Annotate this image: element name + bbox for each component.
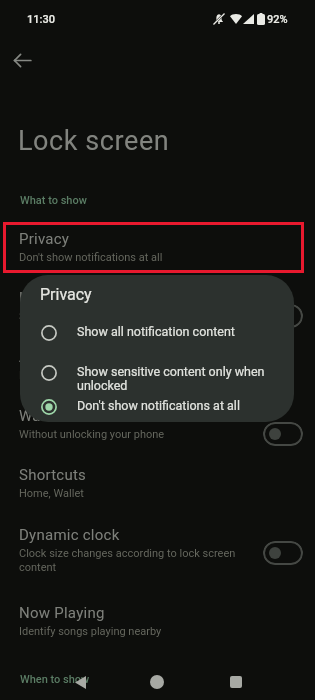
button[interactable]: Wallet [0,407,315,462]
staticText: Device controls [19,369,95,382]
button[interactable]: Show all notification content [20,314,294,348]
button[interactable]: Show sensitive content only when unlocke… [20,354,294,388]
button[interactable]: Back [6,44,38,76]
button[interactable]: Don't show notifications at all [20,388,294,422]
button[interactable]: Recents [220,666,252,698]
staticText: What to show [20,194,87,207]
staticText: Show all notification content [77,324,235,339]
button[interactable]: Now Playing [0,604,315,659]
staticText: 11:30 [27,13,55,26]
button[interactable]: Dynamic clock [0,526,315,581]
staticText: 92% [267,13,288,26]
button[interactable]: Privacy [0,230,315,285]
staticText: Lock screen [18,125,170,157]
staticText: Identify songs playing nearby [19,625,162,638]
button[interactable]: Back [64,666,96,698]
staticText: Add devices [19,348,103,366]
staticText: Shortcuts [19,466,87,484]
button[interactable]: Toggle Dynamic clock [263,541,303,565]
staticText: Don't show notifications at all [19,251,163,264]
button[interactable]: Lock screen [0,289,315,344]
staticText: Dynamic clock [19,526,120,544]
staticText: Without unlocking your phone [19,428,165,441]
button[interactable]: Home [141,666,173,698]
button[interactable]: Toggle Wallet [263,422,303,446]
staticText: Wallet [19,407,62,425]
staticText: Show sensitive content only when unlocke… [77,364,265,393]
staticText: When to show [20,673,90,686]
staticText: Don't show notifications at all [77,398,240,413]
button[interactable]: Add devices [0,348,315,403]
staticText: Privacy [19,230,70,248]
staticText: Show all content [19,310,101,323]
staticText: Now Playing [19,604,105,622]
button[interactable]: Toggle Lock screen [263,304,303,328]
staticText: Home, Wallet [19,487,84,500]
staticText: Clock size changes according to lock scr… [19,547,265,574]
button[interactable]: Shortcuts [0,466,315,521]
staticText: Privacy [40,285,92,304]
staticText: Lock screen [19,289,103,307]
